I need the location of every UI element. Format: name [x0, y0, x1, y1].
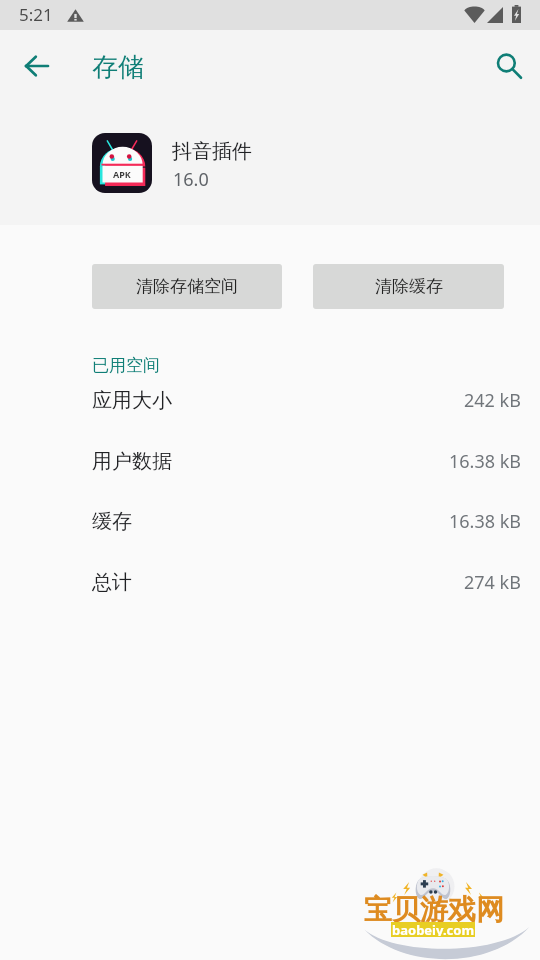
button[interactable]: 总计 — [0, 552, 540, 612]
staticText: 已用空间 — [92, 355, 160, 376]
staticText: 总计 — [92, 570, 132, 595]
staticText: 用户数据 — [92, 449, 172, 474]
staticText: 274 kB — [464, 570, 521, 595]
staticText: 清除缓存 — [375, 276, 443, 297]
staticText: 16.38 kB — [449, 509, 521, 534]
staticText: 抖音插件 — [172, 139, 252, 164]
staticText: 宝贝游戏网 — [364, 892, 504, 927]
button[interactable]: 清除缓存 — [313, 264, 504, 309]
button[interactable]: Search — [485, 42, 533, 90]
staticText: 存储 — [92, 51, 144, 84]
button[interactable]: 缓存 — [0, 491, 540, 551]
staticText: 242 kB — [464, 388, 521, 413]
staticText: 应用大小 — [92, 388, 172, 413]
staticText: 16.38 kB — [449, 449, 521, 474]
button[interactable]: Back — [12, 42, 60, 90]
staticText: 清除存储空间 — [136, 276, 238, 297]
staticText: 16.0 — [173, 167, 209, 192]
staticText: 5:21 — [19, 3, 53, 26]
button[interactable]: 清除存储空间 — [92, 264, 282, 309]
button[interactable]: 用户数据 — [0, 431, 540, 491]
staticText: baobeiy.com — [392, 921, 475, 936]
button[interactable]: 应用大小 — [0, 370, 540, 430]
staticText: APK — [113, 168, 131, 180]
staticText: 缓存 — [92, 509, 132, 534]
